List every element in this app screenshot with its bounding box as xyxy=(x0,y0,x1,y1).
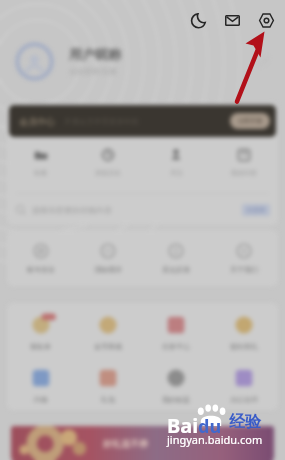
staticText: 去搜索 xyxy=(246,206,266,214)
button[interactable]: 礼包 xyxy=(74,365,142,404)
staticText: 立即开通 xyxy=(238,117,262,125)
staticText: 好礼送不停 xyxy=(103,438,148,449)
staticText: 经验 xyxy=(229,412,261,432)
staticText: 关于我们 xyxy=(230,265,258,274)
button[interactable]: 金币商城 xyxy=(74,312,142,351)
button[interactable]: 关注 xyxy=(142,139,210,193)
button[interactable]: 问卷 xyxy=(7,365,74,404)
staticText: 问卷 xyxy=(34,395,48,404)
staticText: 金币商城 xyxy=(94,342,122,351)
staticText: 清除缓存 xyxy=(94,265,122,274)
staticText: 办公合作 xyxy=(230,395,258,404)
button[interactable]: 我的收益 xyxy=(142,365,210,404)
button[interactable]: 关于我们 xyxy=(210,230,278,286)
staticText: 我的收益 xyxy=(162,395,190,404)
button[interactable]: 意见反馈 xyxy=(142,230,210,286)
button[interactable]: 会员中心 xyxy=(9,105,276,137)
button[interactable]: 签到有礼 xyxy=(210,312,278,351)
button[interactable]: Settings xyxy=(249,3,283,37)
button[interactable]: 我的问答 xyxy=(210,139,278,193)
button[interactable]: 搜索你想要的经验内容 xyxy=(16,194,270,225)
button[interactable]: 好礼送不停 xyxy=(11,426,274,460)
button[interactable]: 任务中心 xyxy=(142,312,210,351)
button[interactable]: 去搜索 xyxy=(242,204,270,216)
staticText: 意见反馈 xyxy=(162,265,190,274)
staticText: 搜索你想要的经验内容 xyxy=(32,205,112,215)
button[interactable]: 浏览历史 xyxy=(74,139,142,193)
button[interactable]: 立即开通 xyxy=(230,113,270,129)
button[interactable]: 办公合作 xyxy=(210,365,278,404)
button[interactable]: Edit profile xyxy=(258,55,271,68)
staticText: 会员中心 xyxy=(19,116,55,127)
button[interactable]: Messages xyxy=(215,3,249,37)
staticText: 签到有礼 xyxy=(230,342,258,351)
button[interactable]: 清除缓存 xyxy=(74,230,142,286)
staticText: 礼包 xyxy=(101,395,115,404)
staticText: 任务中心 xyxy=(162,342,190,351)
button[interactable]: 收藏 xyxy=(7,139,74,193)
staticText: 账号安全 xyxy=(27,265,55,274)
staticText: 领取券 xyxy=(30,342,51,351)
staticText: Bai xyxy=(167,412,199,439)
button[interactable]: Night mode xyxy=(181,3,215,37)
button[interactable]: 领取券 xyxy=(7,312,74,351)
staticText: 用户昵称 xyxy=(69,46,121,62)
button[interactable]: 账号安全 xyxy=(7,230,74,286)
button[interactable]: 用户昵称 xyxy=(15,38,271,84)
staticText: jingyan.baidu.com xyxy=(167,432,263,447)
staticText: du xyxy=(198,414,222,439)
